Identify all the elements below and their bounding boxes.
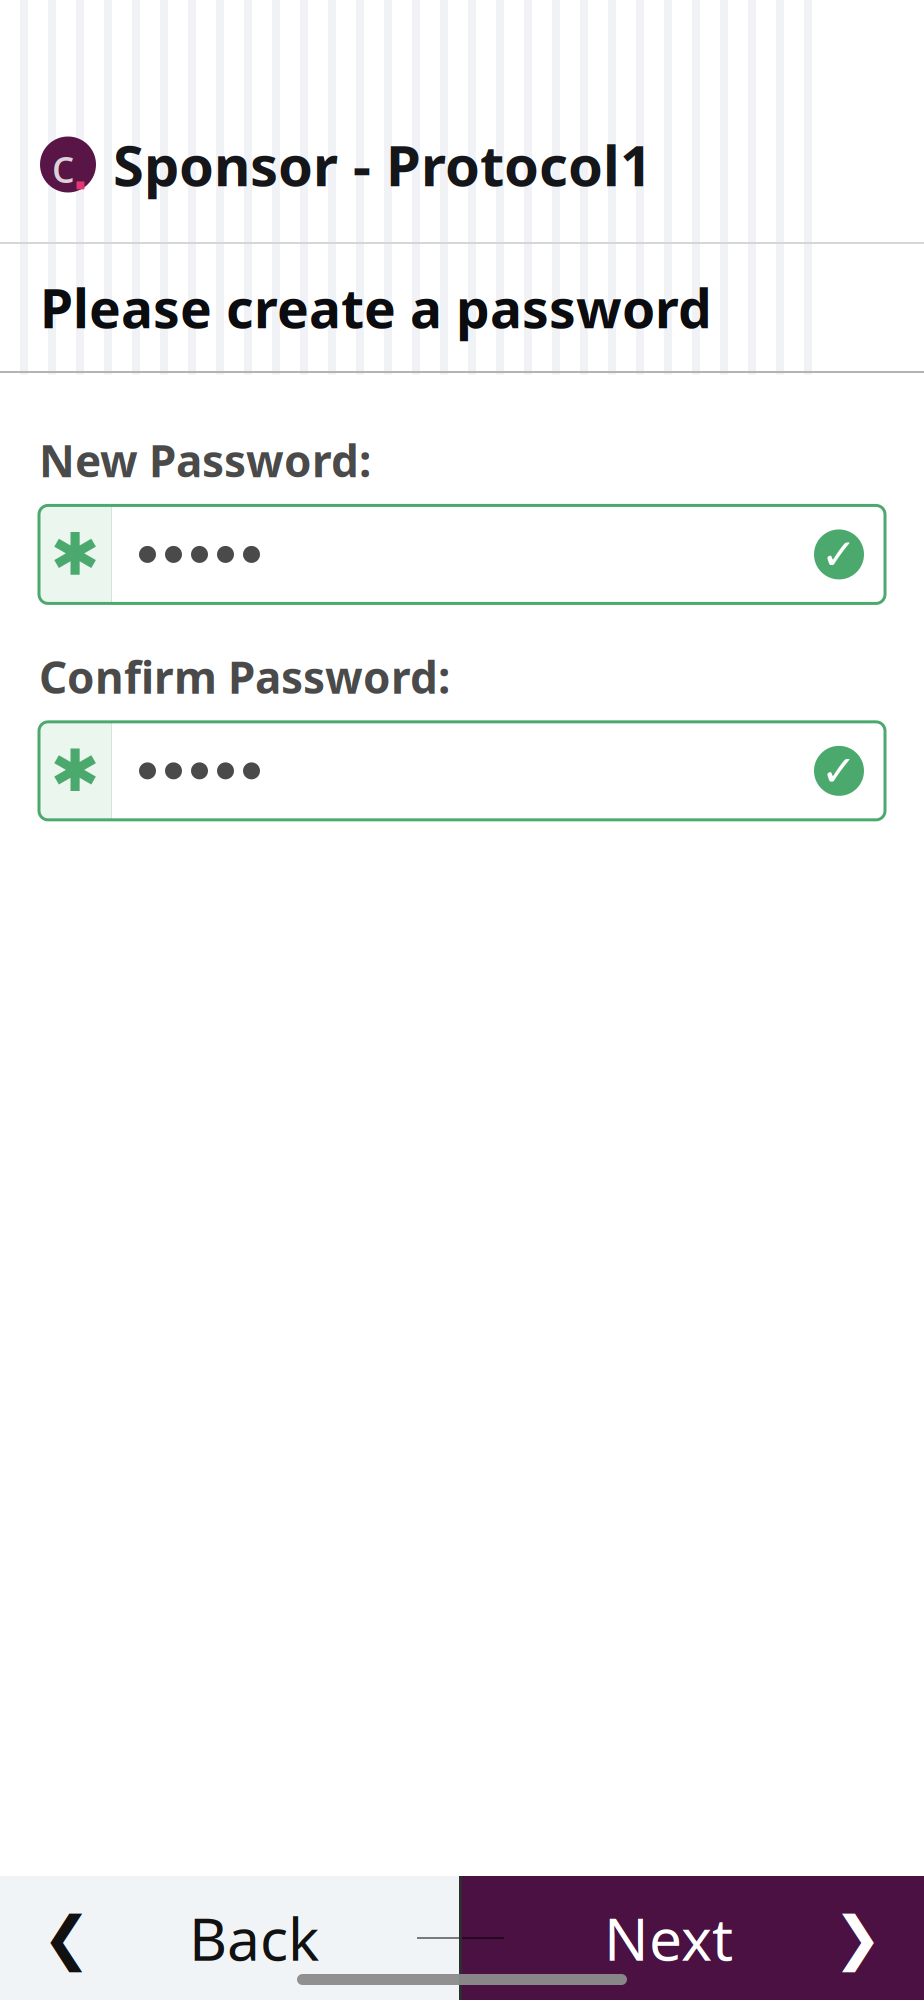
staticText: New Password: [39,431,371,489]
staticText: Back [189,1899,319,1977]
staticText: 68 [806,20,846,66]
staticText: ❯ [833,1905,882,1971]
staticText: Sponsor - Protocol1 [113,127,652,202]
button[interactable]: ✱ [39,722,885,820]
staticText: Please create a password [40,272,712,343]
button[interactable]: ✱ [39,505,885,603]
staticText: Confirm Password: [39,647,450,706]
button[interactable]: Next [462,1876,924,2000]
staticText: ✱ [50,521,99,588]
staticText: c [51,133,74,196]
staticText: ✓ [821,747,857,795]
staticText: 2:05 [76,8,184,79]
button[interactable]: ❮ [0,1876,459,2000]
staticText: ✓ [821,530,857,579]
staticText: Next [604,1899,733,1977]
staticText: ❮ [42,1905,91,1971]
staticText: ✱ [50,738,99,804]
